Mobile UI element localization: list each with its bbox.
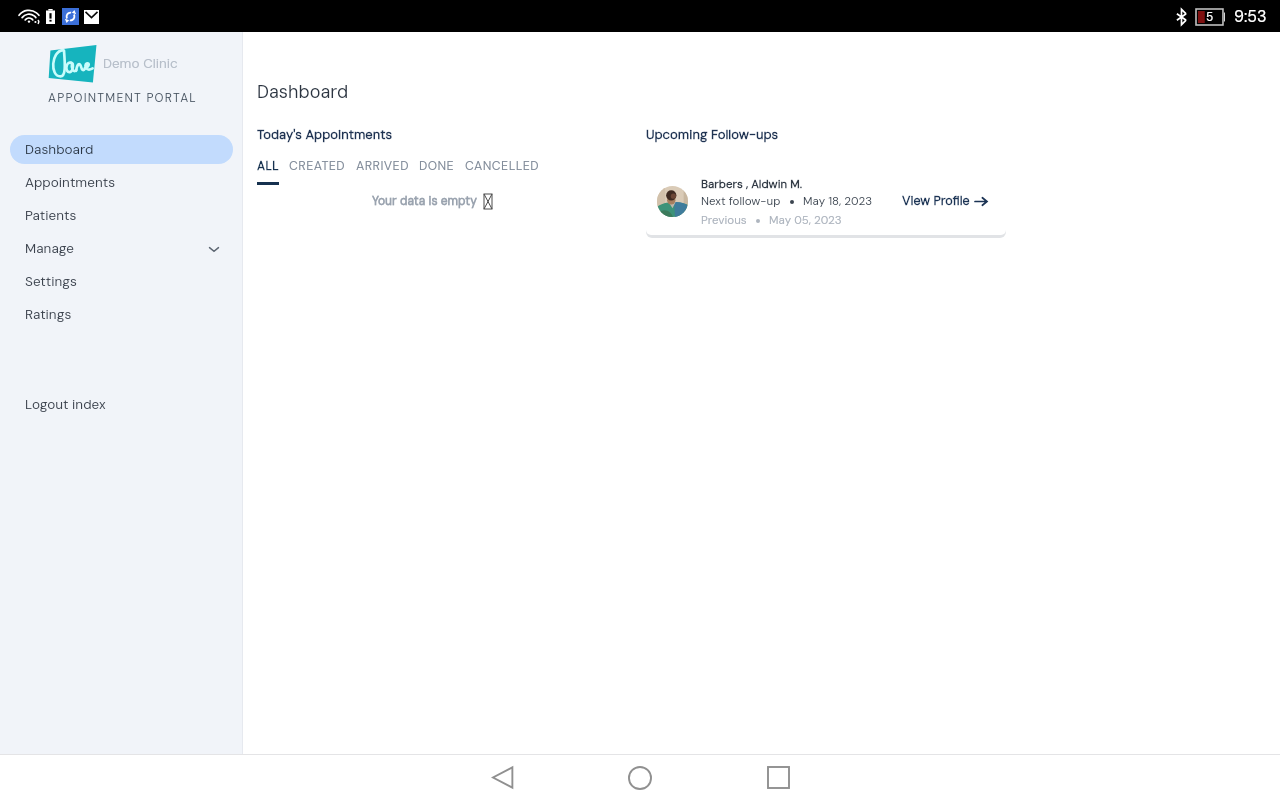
- staticText: Patients: [25, 207, 77, 225]
- staticText: Dashboard: [257, 80, 349, 103]
- button[interactable]: Recent apps: [709, 755, 847, 800]
- button[interactable]: DONE: [419, 158, 455, 185]
- staticText: APPOINTMENT PORTAL: [48, 90, 197, 106]
- button[interactable]: CREATED: [289, 158, 346, 185]
- button[interactable]: ALL: [257, 158, 279, 185]
- staticText: 5: [1206, 9, 1214, 25]
- staticText: Appointments: [25, 174, 116, 192]
- staticText: Next follow-up: [701, 194, 781, 209]
- staticText: DONE: [419, 158, 455, 174]
- staticText: Ratings: [25, 306, 72, 324]
- staticText: Your data is empty: [372, 193, 477, 209]
- staticText: ARRIVED: [356, 158, 409, 174]
- staticText: CREATED: [289, 158, 346, 174]
- button[interactable]: Back: [433, 755, 571, 800]
- staticText: May 05, 2023: [769, 213, 842, 228]
- staticText: Logout index: [25, 396, 106, 414]
- staticText: CANCELLED: [465, 158, 539, 174]
- staticText: View Profile: [902, 193, 970, 209]
- staticText: Upcoming Follow-ups: [646, 126, 779, 143]
- button[interactable]: CANCELLED: [465, 158, 539, 185]
- staticText: ALL: [257, 158, 279, 174]
- button[interactable]: Home: [571, 755, 709, 800]
- button[interactable]: Dashboard: [10, 135, 233, 164]
- staticText: Settings: [25, 273, 77, 291]
- button[interactable]: ARRIVED: [356, 158, 409, 185]
- staticText: Dashboard: [25, 141, 94, 159]
- staticText: 9:53: [1234, 6, 1267, 27]
- button[interactable]: View Profile: [902, 193, 987, 209]
- staticText: Barbers , Aldwin M.: [701, 177, 803, 192]
- button[interactable]: Patients: [10, 201, 233, 230]
- staticText: Today's Appointments: [257, 126, 393, 143]
- staticText: Previous: [701, 213, 747, 228]
- staticText: May 18, 2023: [803, 194, 873, 209]
- staticText: Demo Clinic: [103, 55, 178, 73]
- button[interactable]: Barbers , Aldwin M.: [646, 167, 1006, 235]
- staticText: Manage: [25, 240, 74, 258]
- button[interactable]: Settings: [10, 267, 233, 296]
- button[interactable]: Appointments: [10, 168, 233, 197]
- button[interactable]: Manage: [10, 234, 233, 263]
- button[interactable]: Logout index: [10, 390, 233, 419]
- button[interactable]: Ratings: [10, 300, 233, 329]
